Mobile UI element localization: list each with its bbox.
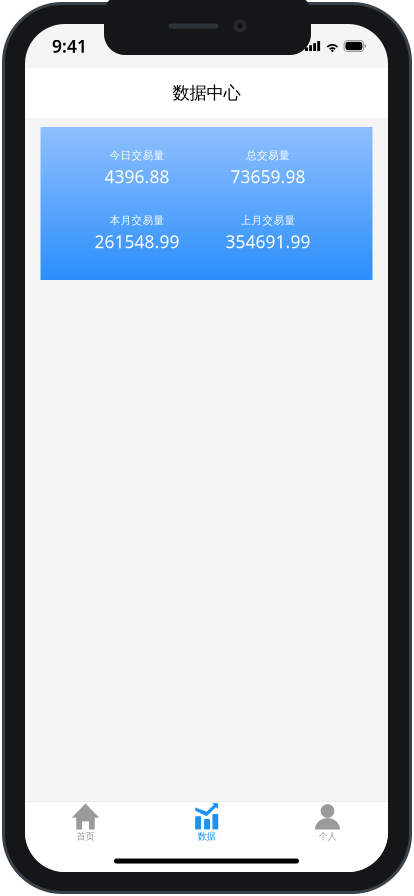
staticText: 今日交易量 <box>109 149 164 162</box>
button[interactable]: 首页 <box>25 801 146 850</box>
button[interactable]: 数据 <box>146 801 267 850</box>
staticText: 首页 <box>76 831 94 842</box>
staticText: 4396.88 <box>104 165 169 188</box>
staticText: 9:41 <box>52 34 87 57</box>
staticText: 261548.99 <box>94 230 179 253</box>
staticText: 数据 <box>197 831 215 842</box>
staticText: 354691.99 <box>225 230 310 253</box>
staticText: 上月交易量 <box>240 214 295 227</box>
button[interactable]: 个人 <box>267 801 388 850</box>
staticText: 总交易量 <box>246 149 290 162</box>
staticText: 个人 <box>318 831 336 842</box>
staticText: 73659.98 <box>230 165 305 188</box>
staticText: 数据中心 <box>172 82 240 104</box>
staticText: 本月交易量 <box>109 214 164 227</box>
